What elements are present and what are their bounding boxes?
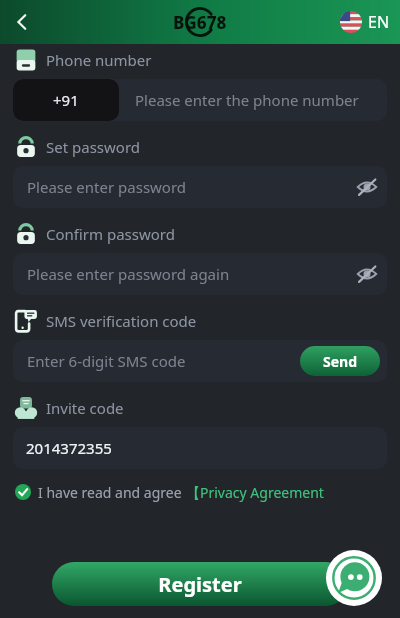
staticText: SMS verification code [46,311,197,331]
button[interactable]: I have read and agree [15,477,400,507]
staticText: +91 [53,90,79,110]
button[interactable]: +91 [13,79,119,121]
button[interactable]: Back [0,0,44,44]
button[interactable]: Register [52,562,348,606]
button[interactable]: 2014372355 [13,427,387,469]
staticText: Invite code [46,398,124,418]
button[interactable]: Customer service chat [326,550,382,606]
button[interactable]: EN [340,11,390,33]
staticText: BG678 [173,11,227,34]
staticText: Please enter the phone number [135,90,359,110]
staticText: Register [158,571,242,598]
staticText: 2014372355 [26,438,112,458]
staticText: Send [323,352,358,371]
staticText: Enter 6-digit SMS code [27,351,300,371]
button[interactable]: Please enter the phone number [119,79,387,121]
button[interactable]: Send [300,346,380,376]
staticText: Please enter password [27,177,347,197]
staticText: Confirm password [46,224,175,244]
staticText: EN [368,11,390,33]
button[interactable]: Please enter password again [13,253,387,295]
staticText: I have read and agree [38,483,186,502]
staticText: Please enter password again [27,264,347,284]
button[interactable]: 【Privacy Agreement [186,483,324,502]
button[interactable]: Show password [347,167,387,207]
button[interactable]: Show password [347,254,387,294]
staticText: Set password [46,137,141,157]
button[interactable]: Please enter password [13,166,387,208]
staticText: Phone number [46,50,152,70]
